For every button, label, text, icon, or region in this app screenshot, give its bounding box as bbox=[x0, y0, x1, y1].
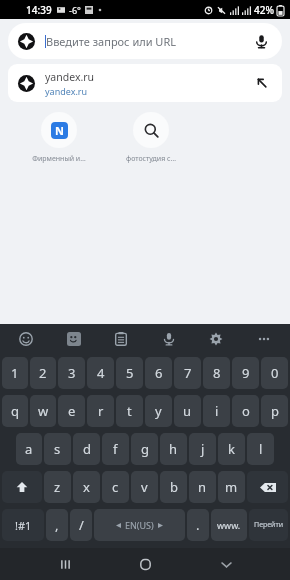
button[interactable]: Стикеры bbox=[62, 327, 86, 351]
button[interactable]: Голосовой поиск bbox=[250, 30, 272, 52]
staticText: y bbox=[155, 402, 162, 420]
staticText: 42% bbox=[254, 3, 274, 17]
button[interactable]: Вставить запрос bbox=[252, 73, 272, 93]
button[interactable]: h bbox=[160, 433, 187, 465]
staticText: 14:39 bbox=[26, 3, 52, 17]
button[interactable]: Домой bbox=[129, 548, 161, 580]
button[interactable]: z bbox=[44, 471, 71, 503]
button[interactable]: 5 bbox=[116, 357, 143, 389]
button[interactable]: Голосовой ввод bbox=[157, 327, 181, 351]
button[interactable]: m bbox=[218, 471, 245, 503]
button[interactable]: 3 bbox=[58, 357, 85, 389]
button[interactable]: y bbox=[145, 395, 172, 427]
staticText: 9 bbox=[242, 364, 250, 382]
button[interactable]: d bbox=[73, 433, 100, 465]
button[interactable]: EN(US) bbox=[94, 509, 185, 541]
staticText: 1 bbox=[11, 364, 19, 382]
staticText: z bbox=[54, 478, 61, 496]
staticText: o bbox=[242, 402, 250, 420]
button[interactable]: q bbox=[2, 395, 28, 427]
button[interactable]: f bbox=[102, 433, 129, 465]
staticText: 2 bbox=[39, 364, 47, 382]
staticText: 7 bbox=[184, 364, 192, 382]
button[interactable]: www. bbox=[211, 509, 247, 541]
button[interactable]: p bbox=[261, 395, 288, 427]
button[interactable]: . bbox=[187, 509, 209, 541]
staticText: фотостудия с… bbox=[126, 154, 176, 164]
button[interactable]: 0 bbox=[261, 357, 288, 389]
button[interactable]: , bbox=[46, 509, 68, 541]
staticText: Перейти bbox=[254, 520, 284, 530]
button[interactable]: j bbox=[189, 433, 216, 465]
button[interactable]: c bbox=[102, 471, 129, 503]
staticText: b bbox=[170, 478, 178, 496]
staticText: i bbox=[215, 402, 219, 420]
button[interactable]: g bbox=[131, 433, 158, 465]
button[interactable]: w bbox=[30, 395, 56, 427]
staticText: !#1 bbox=[15, 518, 32, 533]
button[interactable]: s bbox=[44, 433, 71, 465]
button[interactable]: 2 bbox=[30, 357, 56, 389]
staticText: v bbox=[141, 478, 148, 496]
button[interactable]: Эмодзи bbox=[14, 327, 38, 351]
button[interactable]: v bbox=[131, 471, 158, 503]
button[interactable]: i bbox=[203, 395, 230, 427]
staticText: 0 bbox=[271, 364, 279, 382]
staticText: x bbox=[83, 478, 90, 496]
staticText: c bbox=[112, 478, 119, 496]
button[interactable]: o bbox=[232, 395, 259, 427]
staticText: / bbox=[79, 516, 84, 534]
button[interactable]: 4 bbox=[87, 357, 114, 389]
button[interactable]: Перейти bbox=[249, 509, 288, 541]
button[interactable]: r bbox=[87, 395, 114, 427]
button[interactable]: 7 bbox=[174, 357, 201, 389]
button[interactable]: x bbox=[73, 471, 100, 503]
staticText: 8 bbox=[213, 364, 221, 382]
staticText: Фирменный и… bbox=[32, 154, 86, 164]
staticText: f bbox=[113, 440, 118, 458]
button[interactable]: l bbox=[247, 433, 274, 465]
staticText: Введите запрос или URL bbox=[46, 34, 177, 49]
button[interactable]: N bbox=[22, 112, 96, 164]
staticText: d bbox=[83, 440, 91, 458]
button[interactable]: / bbox=[70, 509, 92, 541]
button[interactable]: k bbox=[218, 433, 245, 465]
staticText: m bbox=[225, 478, 238, 496]
staticText: 4 bbox=[97, 364, 105, 382]
button[interactable]: a bbox=[16, 433, 42, 465]
staticText: u bbox=[183, 402, 192, 420]
staticText: s bbox=[54, 440, 61, 458]
staticText: 6 bbox=[155, 364, 163, 382]
button[interactable]: Недавние bbox=[49, 548, 81, 580]
button[interactable]: Буфер обмена bbox=[109, 327, 133, 351]
button[interactable]: b bbox=[160, 471, 187, 503]
button[interactable]: Ещё bbox=[252, 327, 276, 351]
staticText: -6° bbox=[69, 4, 81, 16]
button[interactable]: u bbox=[174, 395, 201, 427]
staticText: l bbox=[259, 440, 263, 458]
staticText: a bbox=[25, 440, 33, 458]
button[interactable]: !#1 bbox=[2, 509, 44, 541]
button[interactable]: Удалить bbox=[247, 471, 288, 503]
staticText: n bbox=[198, 478, 207, 496]
button[interactable]: Введите запрос или URL bbox=[8, 23, 282, 59]
button[interactable]: 6 bbox=[145, 357, 172, 389]
button[interactable]: e bbox=[58, 395, 85, 427]
staticText: e bbox=[68, 402, 76, 420]
staticText: r bbox=[98, 402, 104, 420]
staticText: 3 bbox=[68, 364, 76, 382]
button[interactable]: 9 bbox=[232, 357, 259, 389]
staticText: www. bbox=[217, 519, 241, 531]
button[interactable]: yandex.ru bbox=[8, 64, 282, 102]
button[interactable]: Shift bbox=[2, 471, 42, 503]
button[interactable]: Настройки bbox=[204, 327, 228, 351]
button[interactable]: 8 bbox=[203, 357, 230, 389]
button[interactable]: t bbox=[116, 395, 143, 427]
button[interactable]: n bbox=[189, 471, 216, 503]
button[interactable]: фотостудия с… bbox=[114, 112, 188, 164]
staticText: N bbox=[55, 123, 64, 138]
button[interactable]: Скрыть клавиатуру bbox=[210, 548, 242, 580]
staticText: k bbox=[228, 440, 235, 458]
button[interactable]: 1 bbox=[2, 357, 28, 389]
staticText: EN(US) bbox=[125, 519, 154, 531]
